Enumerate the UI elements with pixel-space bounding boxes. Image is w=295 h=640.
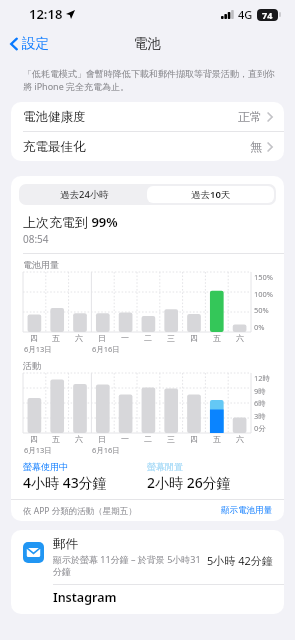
staticText: 郵件 — [53, 536, 78, 552]
staticText: 六 — [236, 333, 244, 343]
button[interactable]: 電池健康度 — [11, 102, 284, 131]
staticText: 0% — [254, 322, 265, 332]
staticText: 6月13日 — [24, 344, 52, 354]
staticText: 螢幕閒置 — [147, 461, 183, 472]
staticText: 三 — [167, 333, 175, 343]
staticText: 五 — [52, 434, 60, 444]
staticText: 正常 — [238, 109, 262, 124]
staticText: 四 — [30, 333, 38, 343]
staticText: 12時 — [254, 373, 271, 383]
staticText: 一 — [121, 333, 129, 343]
staticText: 活動 — [23, 360, 41, 371]
staticText: 四 — [30, 434, 38, 444]
staticText: 六 — [75, 434, 83, 444]
staticText: 6月16日 — [92, 445, 120, 455]
staticText: 74 — [262, 9, 273, 21]
button[interactable]: 過去10天 — [147, 186, 274, 203]
staticText: 五 — [213, 434, 221, 444]
staticText: 3時 — [254, 411, 266, 421]
staticText: 上次充電到 99% — [23, 213, 118, 231]
button[interactable]: 顯示電池用量 — [221, 505, 272, 516]
button[interactable]: 充電最佳化 — [11, 132, 284, 161]
staticText: 過去24小時 — [60, 188, 109, 201]
staticText: 設定 — [22, 35, 49, 52]
staticText: 08:54 — [23, 232, 49, 246]
staticText: 「低耗電模式」會暫時降低下載和郵件擷取等背景活動，直到你將 iPhone 完全充… — [23, 68, 277, 93]
staticText: 顯示於螢幕 11分鐘 – 於背景 5小時31分鐘 — [53, 553, 205, 578]
staticText: 150% — [254, 272, 274, 282]
button[interactable]: 郵件 — [11, 530, 284, 584]
staticText: 6月16日 — [92, 344, 120, 354]
staticText: 一 — [121, 434, 129, 444]
staticText: 四 — [190, 333, 198, 343]
button[interactable]: 設定 — [6, 30, 53, 57]
staticText: 六 — [236, 434, 244, 444]
staticText: 依 APP 分類的活動（星期五） — [23, 505, 137, 517]
staticText: 電池用量 — [23, 259, 59, 270]
staticText: 二 — [144, 434, 152, 444]
staticText: 顯示電池用量 — [221, 505, 272, 516]
staticText: 日 — [98, 434, 106, 444]
staticText: 二 — [144, 333, 152, 343]
staticText: 50% — [254, 305, 269, 315]
staticText: 0分 — [254, 423, 266, 433]
staticText: 100% — [254, 289, 274, 299]
staticText: 4小時 43分鐘 — [23, 473, 107, 492]
staticText: 電池健康度 — [23, 109, 86, 125]
button[interactable]: 過去24小時 — [21, 186, 147, 203]
staticText: 電池 — [134, 35, 161, 52]
staticText: 三 — [167, 434, 175, 444]
staticText: 2小時 26分鐘 — [147, 473, 231, 492]
staticText: 6時 — [254, 398, 266, 408]
staticText: 5小時 42分鐘 — [207, 553, 273, 568]
staticText: 五 — [213, 333, 221, 343]
staticText: 充電最佳化 — [23, 139, 86, 155]
staticText: 9時 — [254, 386, 266, 396]
staticText: 4G — [238, 7, 253, 22]
staticText: Instagram — [53, 589, 117, 606]
button[interactable]: Instagram — [11, 585, 284, 614]
staticText: 無 — [250, 139, 262, 154]
staticText: 過去10天 — [191, 188, 231, 201]
staticText: 6月13日 — [24, 445, 52, 455]
staticText: 螢幕使用中 — [23, 461, 68, 472]
staticText: 五 — [52, 333, 60, 343]
staticText: 日 — [98, 333, 106, 343]
staticText: 六 — [75, 333, 83, 343]
staticText: 12:18 — [29, 5, 63, 23]
staticText: 四 — [190, 434, 198, 444]
